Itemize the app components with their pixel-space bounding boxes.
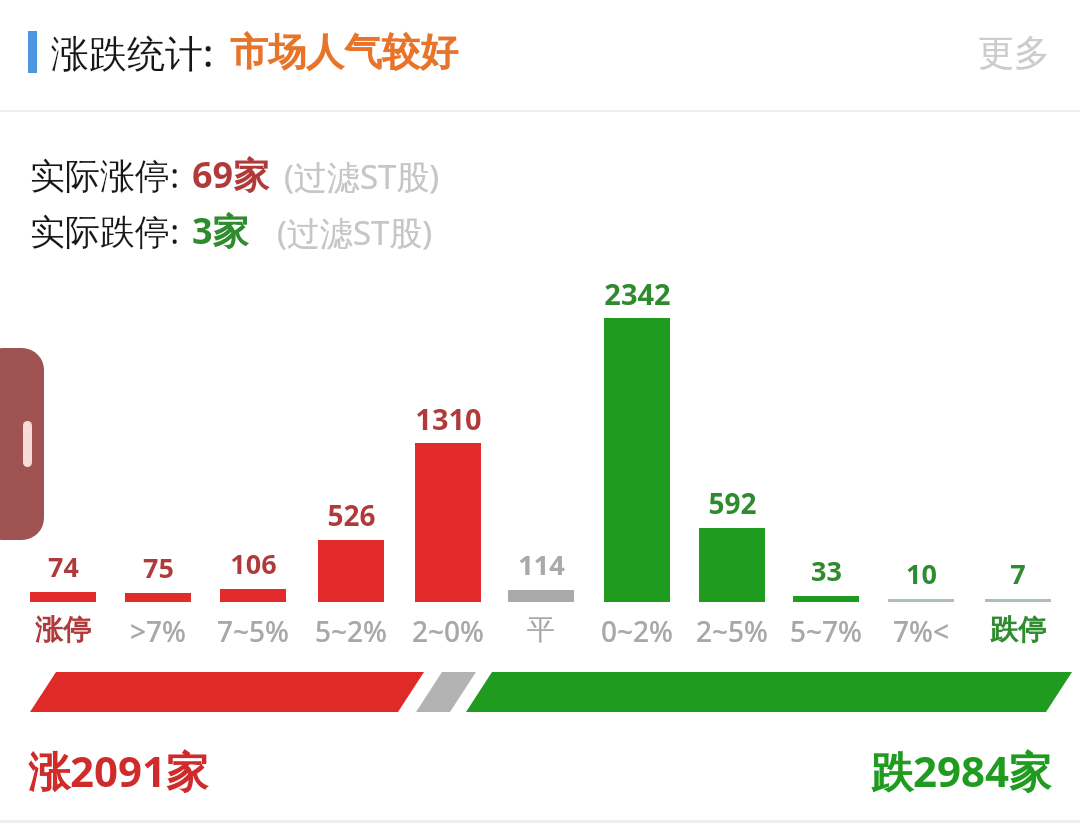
staticText: 市场人气较好 bbox=[230, 28, 458, 76]
staticText: 75 bbox=[143, 549, 174, 586]
staticText: 69家 bbox=[192, 150, 270, 199]
staticText: 5~2% bbox=[315, 612, 387, 650]
staticText: 7%< bbox=[893, 612, 949, 650]
staticText: 0~2% bbox=[601, 612, 673, 650]
staticText: 2342 bbox=[604, 274, 671, 313]
staticText: 7 bbox=[1010, 555, 1026, 592]
staticText: 涨2091家 bbox=[28, 742, 209, 799]
staticText: 实际涨停: bbox=[30, 151, 180, 199]
staticText: 526 bbox=[327, 496, 376, 534]
staticText: 跌停 bbox=[990, 612, 1046, 647]
button[interactable]: Open side panel bbox=[0, 348, 44, 540]
staticText: 5~7% bbox=[790, 612, 862, 650]
staticText: 74 bbox=[48, 548, 79, 585]
staticText: 2~0% bbox=[412, 612, 484, 650]
staticText: >7% bbox=[130, 612, 186, 650]
staticText: 2~5% bbox=[696, 612, 768, 650]
staticText: 跌2984家 bbox=[871, 742, 1052, 799]
button[interactable]: 更多 bbox=[948, 14, 1080, 91]
staticText: 平 bbox=[527, 612, 555, 647]
staticText: 1310 bbox=[415, 399, 482, 438]
staticText: 实际跌停: bbox=[30, 207, 180, 255]
staticText: 592 bbox=[708, 484, 757, 522]
staticText: 106 bbox=[230, 545, 277, 582]
staticText: 涨跌统计: bbox=[51, 26, 214, 78]
staticText: (过滤ST股) bbox=[284, 154, 440, 199]
staticText: 更多 bbox=[978, 30, 1050, 75]
staticText: 114 bbox=[518, 546, 565, 583]
staticText: 7~5% bbox=[217, 612, 289, 650]
staticText: 3家 bbox=[192, 206, 249, 255]
staticText: (过滤ST股) bbox=[277, 210, 433, 255]
staticText: 涨停 bbox=[35, 612, 91, 647]
staticText: 10 bbox=[906, 555, 937, 592]
staticText: 33 bbox=[811, 552, 842, 589]
